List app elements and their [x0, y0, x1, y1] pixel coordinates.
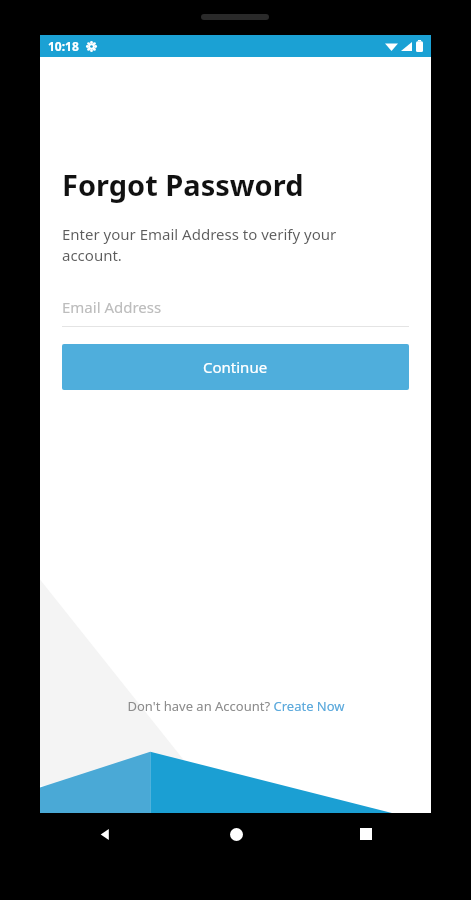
button[interactable]: Home	[171, 813, 301, 855]
staticText: Forgot Password	[62, 165, 304, 204]
staticText: Continue	[203, 357, 268, 377]
button[interactable]: Continue	[62, 344, 409, 390]
staticText: Don't have an Account? Create Now	[127, 697, 345, 715]
button[interactable]: Back	[40, 813, 171, 855]
staticText: Enter your Email Address to verify your …	[62, 224, 337, 266]
button[interactable]: Email Address	[62, 294, 409, 327]
button[interactable]: Don't have an Account? Create Now	[127, 697, 345, 715]
button[interactable]: Recent apps	[301, 813, 431, 855]
staticText: Email Address	[62, 297, 162, 317]
staticText: 10:18	[48, 38, 79, 54]
